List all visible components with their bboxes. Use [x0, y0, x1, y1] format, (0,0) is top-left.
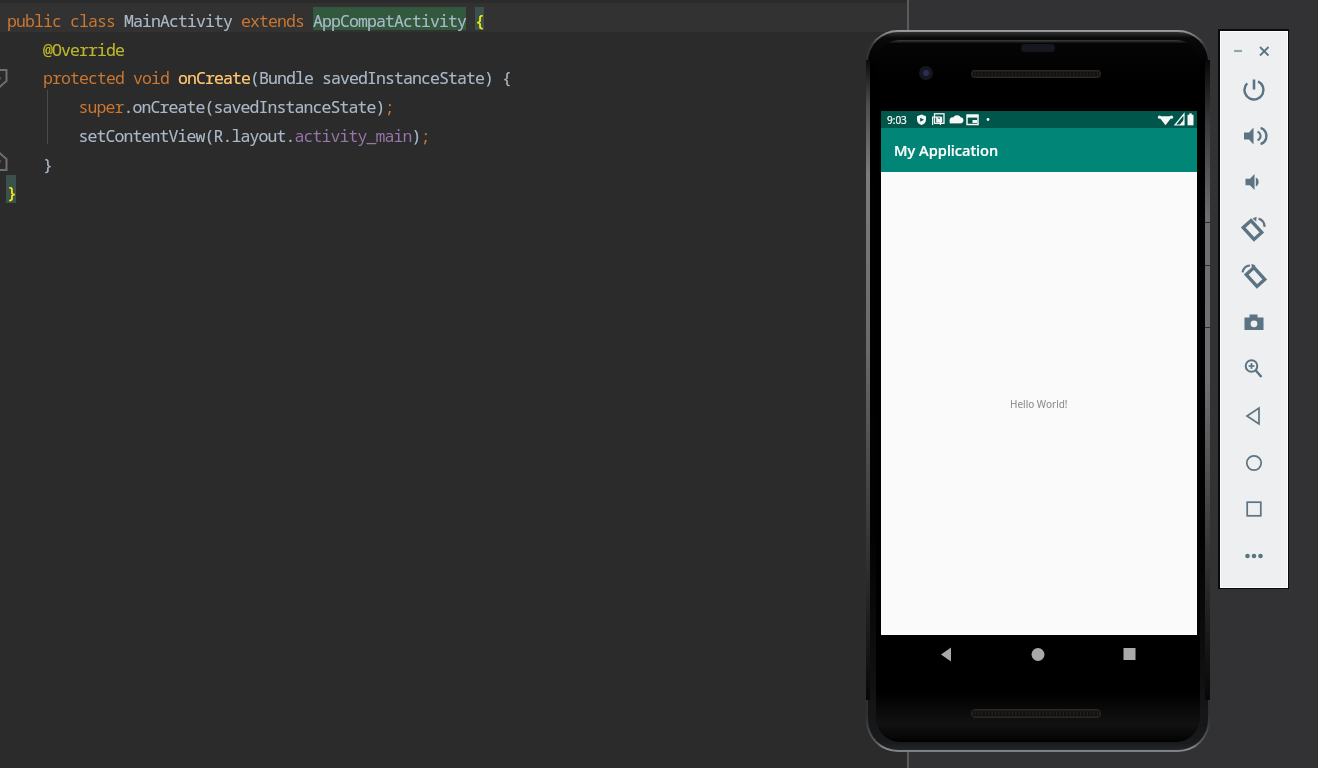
- staticText: 9:03: [887, 113, 907, 127]
- button[interactable]: Overview: [1239, 494, 1269, 524]
- button[interactable]: Close: [1252, 39, 1276, 63]
- button[interactable]: Power: [1239, 74, 1269, 104]
- button[interactable]: Volume down: [1239, 167, 1269, 197]
- staticText: Hello World!: [1010, 397, 1068, 411]
- button[interactable]: Rotate left: [1239, 214, 1269, 244]
- button[interactable]: Minimize: [1222, 39, 1246, 63]
- staticText: public class MainActivity extends AppCom…: [7, 9, 484, 31]
- staticText: }: [7, 181, 16, 203]
- button[interactable]: Recent apps: [1110, 635, 1150, 675]
- staticText: @Override: [43, 38, 124, 60]
- button[interactable]: Take screenshot: [1239, 308, 1269, 338]
- button[interactable]: Zoom: [1239, 354, 1269, 384]
- button[interactable]: Rotate right: [1239, 261, 1269, 291]
- button[interactable]: More: [1239, 541, 1269, 571]
- staticText: My Application: [894, 140, 999, 160]
- staticText: }: [43, 153, 52, 175]
- staticText: setContentView(R.layout.activity_main);: [79, 124, 430, 146]
- button[interactable]: Back: [926, 635, 966, 675]
- staticText: protected void onCreate(Bundle savedInst…: [43, 66, 511, 88]
- button[interactable]: Back: [1239, 401, 1269, 431]
- staticText: super.onCreate(savedInstanceState);: [79, 95, 394, 117]
- button[interactable]: Home: [1018, 635, 1058, 675]
- button[interactable]: Volume up: [1239, 121, 1269, 151]
- button[interactable]: Home: [1239, 448, 1269, 478]
- button[interactable]: My Application: [881, 128, 1197, 172]
